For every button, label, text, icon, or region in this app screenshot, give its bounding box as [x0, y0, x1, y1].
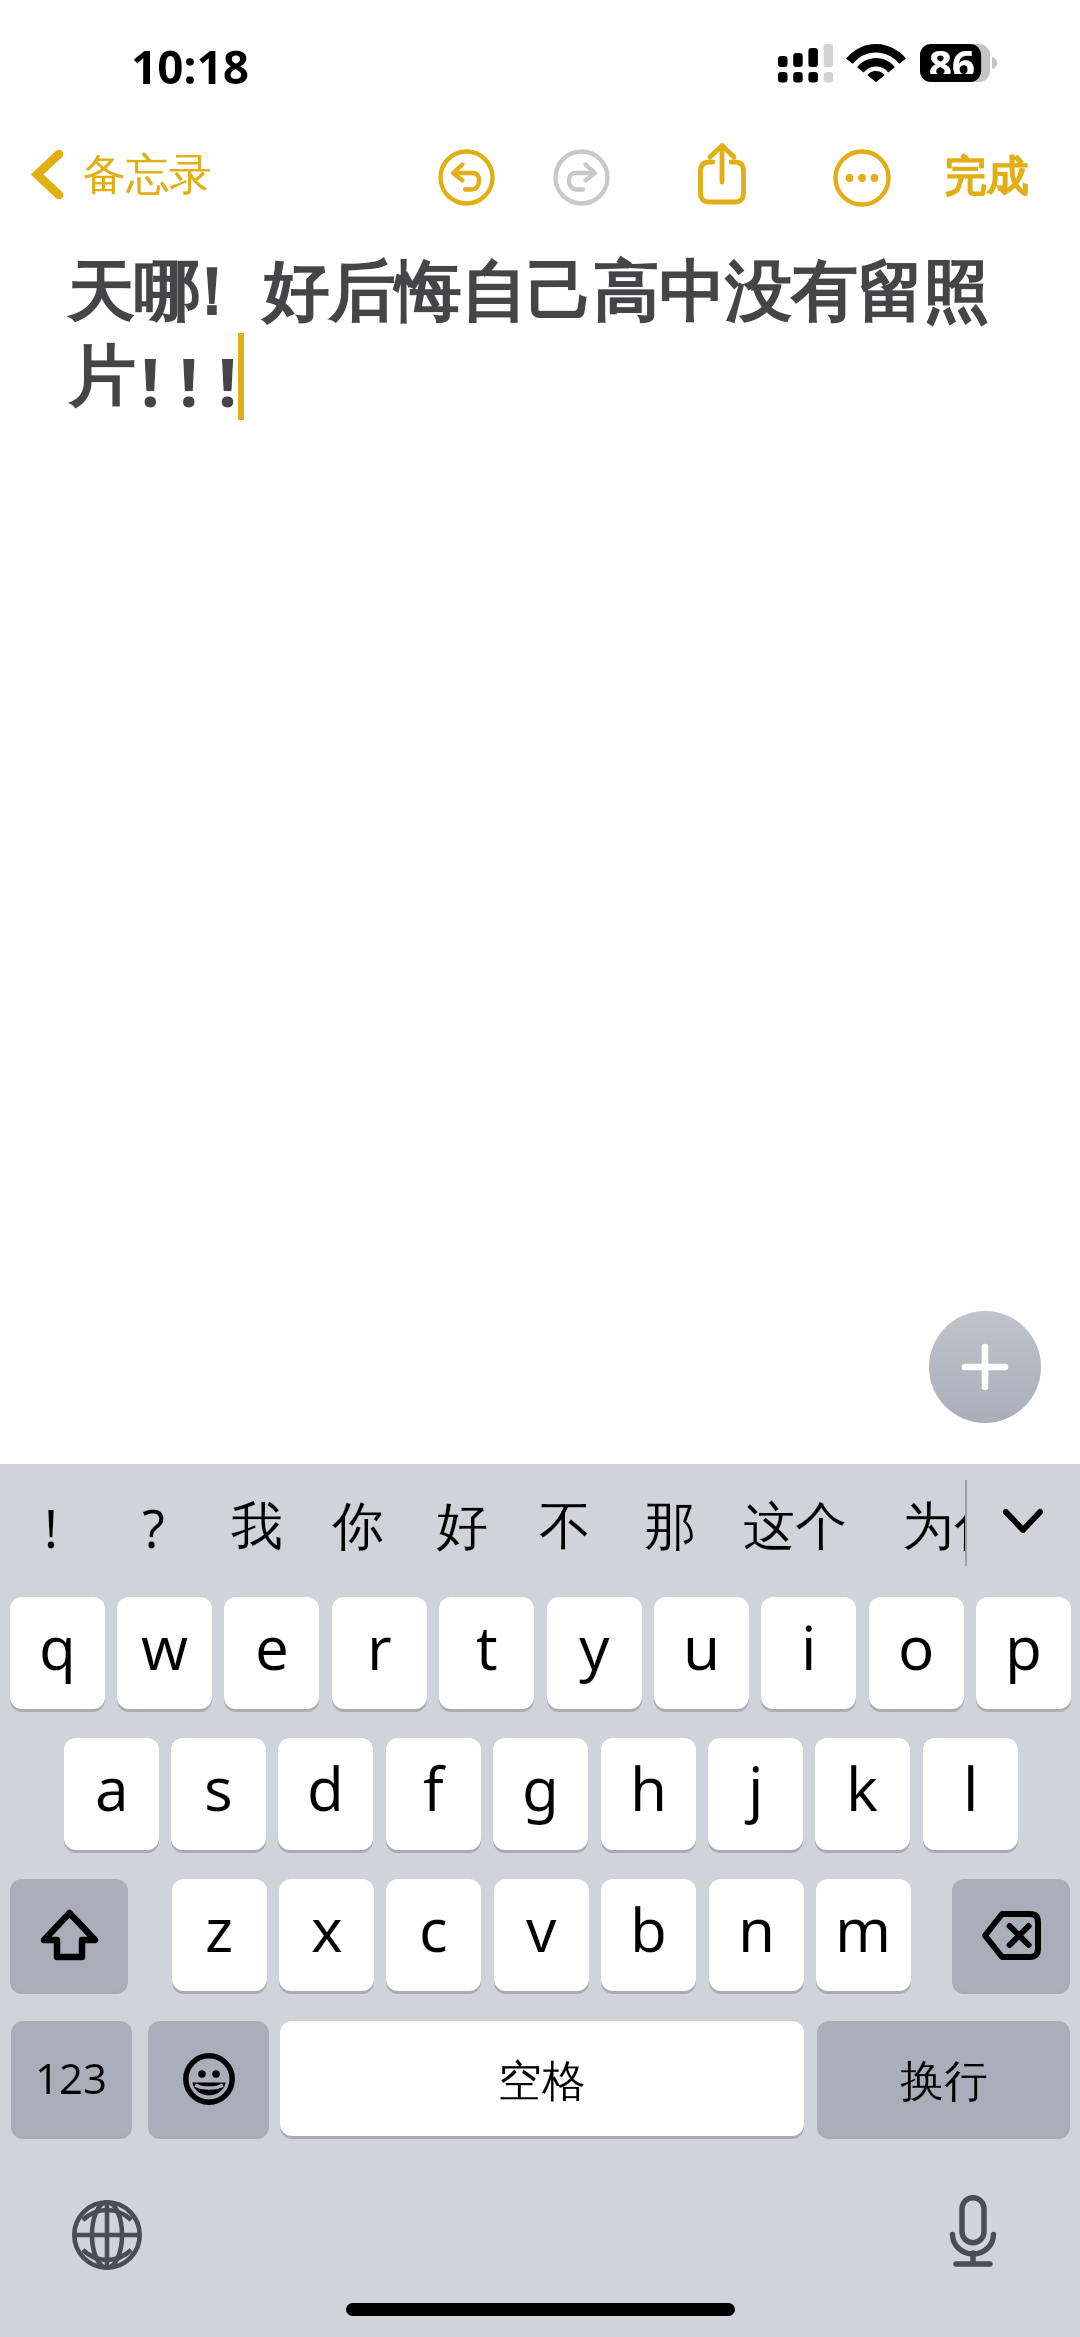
staticText: p	[1005, 1606, 1042, 1688]
staticText: n	[738, 1888, 776, 1970]
button[interactable]: y	[547, 1597, 642, 1709]
staticText: 备忘录	[83, 148, 212, 202]
staticText: 为什	[902, 1494, 967, 1560]
staticText: f	[423, 1747, 444, 1829]
button[interactable]: 我	[202, 1464, 312, 1590]
staticText: t	[476, 1606, 498, 1688]
staticText: 天哪	[67, 251, 199, 334]
button[interactable]: Note text	[0, 225, 1080, 1464]
staticText: r	[367, 1606, 392, 1688]
button[interactable]: Hide candidates	[973, 1464, 1073, 1590]
button[interactable]: 空格	[280, 2021, 804, 2136]
staticText: ?	[142, 1492, 165, 1563]
staticText: s	[204, 1747, 233, 1829]
button[interactable]: a	[64, 1738, 159, 1850]
staticText: z	[205, 1888, 234, 1970]
button[interactable]: More options	[817, 130, 907, 225]
button[interactable]: 123	[11, 2021, 132, 2136]
button[interactable]: 好	[407, 1464, 517, 1590]
button[interactable]: b	[601, 1879, 696, 1991]
button[interactable]: q	[10, 1597, 105, 1709]
button[interactable]: 那	[615, 1464, 725, 1590]
button[interactable]: Emoji	[148, 2021, 269, 2136]
button[interactable]: f	[386, 1738, 481, 1850]
button[interactable]: 完成	[944, 130, 1028, 225]
staticText: d	[307, 1747, 344, 1829]
button[interactable]: 不	[510, 1464, 620, 1590]
staticText: h	[630, 1747, 668, 1829]
staticText: 那	[644, 1494, 696, 1560]
button[interactable]: s	[171, 1738, 266, 1850]
staticText: 好	[436, 1494, 488, 1560]
button[interactable]: g	[493, 1738, 588, 1850]
staticText: !	[44, 1492, 58, 1563]
staticText: c	[419, 1888, 448, 1970]
button[interactable]: z	[172, 1879, 267, 1991]
staticText: a	[95, 1747, 129, 1829]
button[interactable]: 为什	[902, 1464, 967, 1590]
staticText: l	[963, 1747, 979, 1829]
staticText: w	[141, 1606, 189, 1688]
button[interactable]: Share	[677, 130, 767, 225]
button[interactable]: 备忘录	[32, 127, 212, 222]
staticText: 好后悔自己高中没有留照	[262, 251, 988, 334]
button[interactable]: 换行	[817, 2021, 1070, 2136]
button[interactable]: e	[224, 1597, 319, 1709]
button[interactable]: 这个	[740, 1464, 850, 1590]
button[interactable]: 你	[303, 1464, 413, 1590]
button[interactable]: Add attachment	[929, 1311, 1041, 1423]
staticText: m	[835, 1888, 892, 1970]
button[interactable]: ?	[98, 1464, 208, 1590]
button[interactable]: l	[923, 1738, 1018, 1850]
button[interactable]: d	[278, 1738, 373, 1850]
staticText: b	[630, 1888, 667, 1970]
staticText: j	[748, 1747, 764, 1829]
button[interactable]: j	[708, 1738, 803, 1850]
button[interactable]: t	[439, 1597, 534, 1709]
button[interactable]: h	[601, 1738, 696, 1850]
button[interactable]: w	[117, 1597, 212, 1709]
button[interactable]: k	[815, 1738, 910, 1850]
staticText: g	[522, 1747, 559, 1829]
staticText: i	[801, 1606, 817, 1688]
button[interactable]: Undo	[421, 130, 511, 225]
button[interactable]: r	[332, 1597, 427, 1709]
staticText: 空格	[498, 2054, 586, 2109]
button[interactable]: !	[0, 1464, 106, 1590]
button[interactable]: i	[761, 1597, 856, 1709]
staticText: 这个	[743, 1494, 847, 1560]
button[interactable]: m	[816, 1879, 911, 1991]
staticText: e	[255, 1606, 289, 1688]
staticText: u	[683, 1606, 721, 1688]
button[interactable]: c	[386, 1879, 481, 1991]
button[interactable]: n	[709, 1879, 804, 1991]
button[interactable]: p	[976, 1597, 1071, 1709]
button[interactable]: Shift	[10, 1879, 128, 1991]
staticText: k	[846, 1747, 879, 1829]
button[interactable]: Backspace	[952, 1879, 1070, 1991]
button[interactable]: u	[654, 1597, 749, 1709]
button[interactable]: Switch keyboard	[60, 2188, 154, 2282]
staticText: o	[898, 1606, 935, 1688]
staticText: 片	[68, 336, 134, 419]
button[interactable]: v	[494, 1879, 589, 1991]
staticText: !!!	[141, 336, 257, 426]
staticText: 123	[35, 2049, 108, 2106]
staticText: x	[311, 1888, 343, 1970]
button[interactable]: x	[279, 1879, 374, 1991]
button[interactable]: o	[869, 1597, 964, 1709]
staticText: 你	[332, 1494, 384, 1560]
staticText: y	[579, 1606, 610, 1688]
staticText: 10:18	[131, 35, 250, 98]
staticText: 换行	[900, 2054, 988, 2109]
staticText: 我	[231, 1494, 283, 1560]
staticText: 86	[929, 36, 975, 74]
staticText: 完成	[944, 151, 1028, 204]
staticText: 不	[539, 1494, 591, 1560]
staticText: ！	[178, 251, 244, 334]
button[interactable]: Dictate	[926, 2184, 1020, 2278]
staticText: q	[39, 1606, 76, 1688]
staticText: v	[526, 1888, 557, 1970]
button[interactable]: Redo	[536, 130, 626, 225]
